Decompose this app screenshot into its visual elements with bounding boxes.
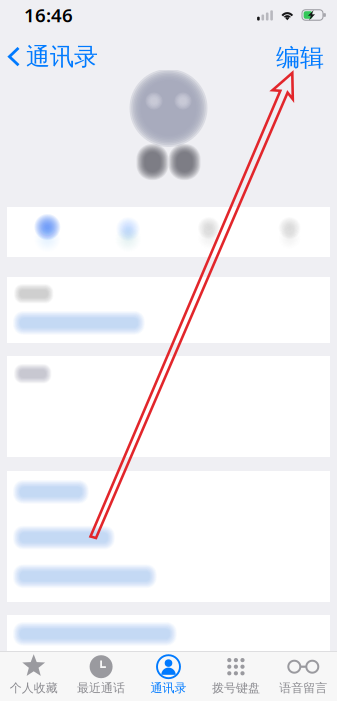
button[interactable]: 通讯录 (0, 32, 106, 70)
staticText: 16:46 (24, 3, 73, 27)
button[interactable] (7, 558, 330, 602)
button[interactable]: 最近通话 (67, 652, 135, 701)
staticText: 语音留言 (279, 681, 327, 695)
button[interactable]: 个人收藏 (0, 652, 67, 701)
staticText: 最近通话 (77, 681, 125, 695)
button[interactable]: Video call (168, 207, 249, 257)
button[interactable]: Send mail (249, 207, 330, 257)
button[interactable]: 语音留言 (270, 652, 337, 701)
button[interactable]: Send message (7, 207, 88, 257)
button[interactable]: 编辑 (263, 32, 337, 70)
staticText: 个人收藏 (10, 681, 58, 695)
staticText: 拨号键盘 (212, 681, 260, 695)
button[interactable]: 通讯录 (135, 652, 202, 701)
button[interactable] (7, 515, 330, 558)
button[interactable] (0, 356, 337, 457)
staticText: 编辑 (276, 43, 324, 72)
button[interactable] (0, 615, 337, 659)
staticText: 通讯录 (26, 42, 98, 71)
button[interactable] (0, 277, 337, 343)
staticText: 通讯录 (150, 681, 186, 695)
button[interactable] (7, 471, 330, 515)
button[interactable]: Call (88, 207, 169, 257)
button[interactable]: 拨号键盘 (202, 652, 270, 701)
